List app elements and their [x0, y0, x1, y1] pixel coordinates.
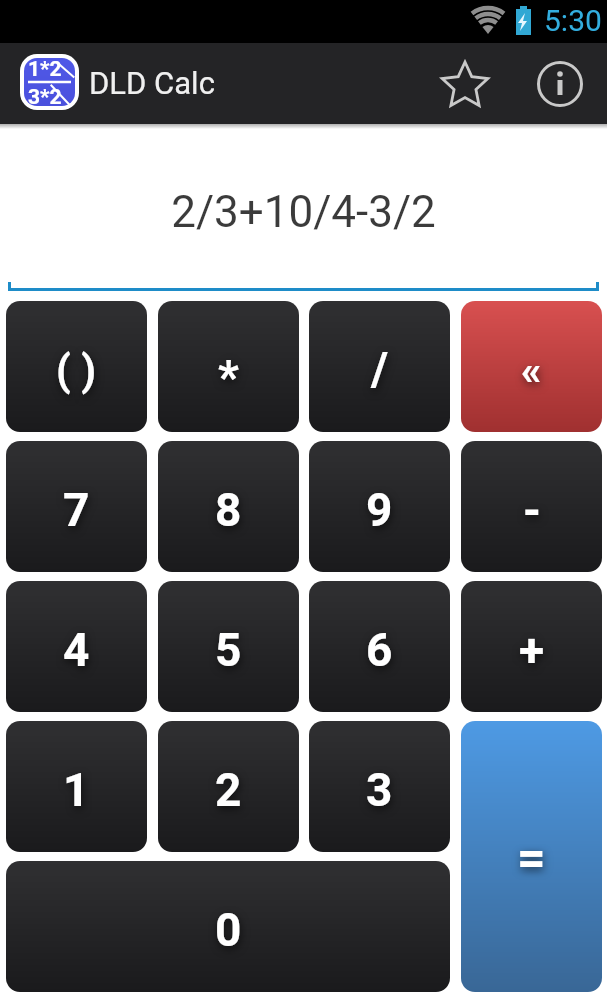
staticText: 3*2: [28, 85, 62, 110]
button[interactable]: /: [309, 301, 450, 432]
staticText: +: [519, 623, 545, 677]
button[interactable]: 3: [309, 721, 450, 852]
button[interactable]: 1: [6, 721, 147, 852]
staticText: 3: [366, 763, 393, 817]
button[interactable]: 0: [6, 861, 450, 992]
button[interactable]: +: [461, 581, 602, 712]
button[interactable]: =: [461, 721, 602, 992]
button[interactable]: ( ): [6, 301, 147, 432]
button[interactable]: [432, 51, 498, 117]
staticText: 7: [63, 483, 90, 537]
button[interactable]: 2: [158, 721, 299, 852]
staticText: 9: [366, 483, 393, 537]
button[interactable]: *: [158, 301, 299, 432]
staticText: *: [218, 350, 239, 404]
staticText: =: [517, 829, 546, 888]
button[interactable]: 9: [309, 441, 450, 572]
button[interactable]: [527, 51, 593, 117]
button[interactable]: 1*2: [20, 54, 79, 110]
staticText: /: [371, 342, 389, 396]
button[interactable]: 8: [158, 441, 299, 572]
button[interactable]: «: [461, 301, 602, 432]
staticText: -: [523, 484, 541, 538]
button[interactable]: 4: [6, 581, 147, 712]
button[interactable]: 6: [309, 581, 450, 712]
staticText: ( ): [56, 346, 97, 395]
staticText: 8: [215, 483, 242, 537]
staticText: 5:30: [544, 3, 602, 38]
staticText: 2: [215, 763, 242, 817]
staticText: 6: [366, 623, 393, 677]
button[interactable]: 7: [6, 441, 147, 572]
staticText: «: [521, 347, 542, 395]
staticText: DLD Calc: [89, 65, 215, 101]
staticText: 1: [63, 763, 90, 817]
staticText: 5: [215, 623, 242, 677]
button[interactable]: -: [461, 441, 602, 572]
button[interactable]: 5: [158, 581, 299, 712]
staticText: 2/3+10/4-3/2: [0, 186, 607, 238]
staticText: 0: [215, 903, 242, 957]
staticText: 1*2: [28, 57, 62, 82]
staticText: 4: [63, 623, 90, 677]
